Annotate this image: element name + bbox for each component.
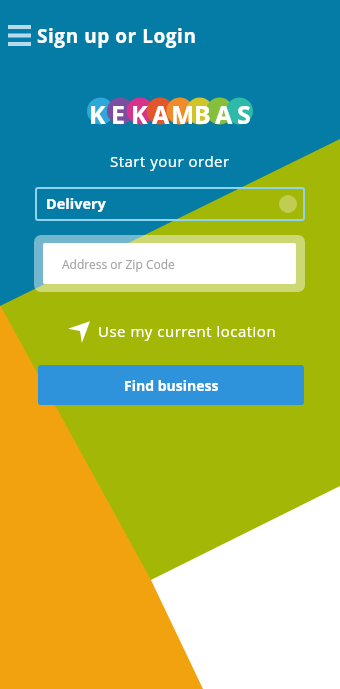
button[interactable]: Address or Zip Code	[43, 243, 296, 284]
staticText: Delivery	[46, 194, 106, 214]
other: Use my current location	[68, 319, 90, 343]
staticText: A	[152, 97, 170, 125]
staticText: Start your order	[110, 151, 230, 171]
staticText: K	[131, 97, 148, 125]
staticText: Find business	[124, 376, 219, 395]
staticText: Address or Zip Code	[62, 256, 175, 272]
staticText: B	[194, 97, 211, 125]
staticText: E	[111, 97, 126, 125]
staticText: A	[215, 97, 233, 125]
staticText: S	[237, 97, 251, 125]
other: Open navigation menu	[8, 25, 31, 46]
button[interactable]: Find business	[38, 365, 304, 405]
button[interactable]: Use my current location	[68, 317, 277, 345]
button[interactable]: Delivery	[35, 187, 305, 221]
staticText: K	[89, 97, 106, 125]
button[interactable]: Open navigation menu	[0, 18, 197, 53]
staticText: M	[171, 97, 192, 125]
staticText: Use my current location	[98, 321, 277, 341]
staticText: Sign up or Login	[37, 23, 197, 49]
